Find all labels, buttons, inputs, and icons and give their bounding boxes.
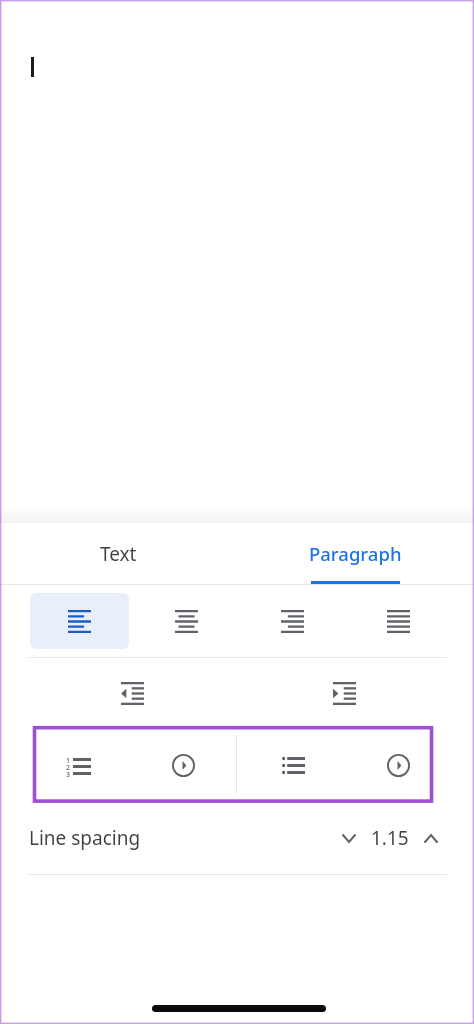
button[interactable]: Paragraph [237, 523, 474, 584]
staticText: 3 [66, 770, 71, 780]
button[interactable]: Align center [137, 593, 235, 649]
button[interactable]: Decrease indent [26, 658, 238, 729]
button[interactable]: Bulleted list [239, 729, 347, 802]
button[interactable]: Increase line spacing [409, 816, 453, 860]
staticText: 1.15 [371, 825, 409, 851]
staticText: 1 [66, 756, 71, 766]
button[interactable]: Align right [243, 593, 341, 649]
button[interactable]: Align left [30, 593, 129, 649]
staticText: 2 [66, 763, 71, 773]
staticText: Line spacing [29, 825, 141, 851]
button[interactable]: Numbered list [26, 729, 131, 802]
button[interactable]: Text [0, 523, 237, 584]
button[interactable]: Bulleted list options [344, 729, 453, 802]
button[interactable]: Justify [349, 593, 447, 649]
staticText: Text [100, 541, 137, 567]
staticText: Paragraph [309, 541, 402, 566]
button[interactable]: Numbered list options [131, 729, 236, 802]
button[interactable]: Increase indent [238, 658, 451, 729]
button[interactable]: Decrease line spacing [327, 816, 371, 860]
